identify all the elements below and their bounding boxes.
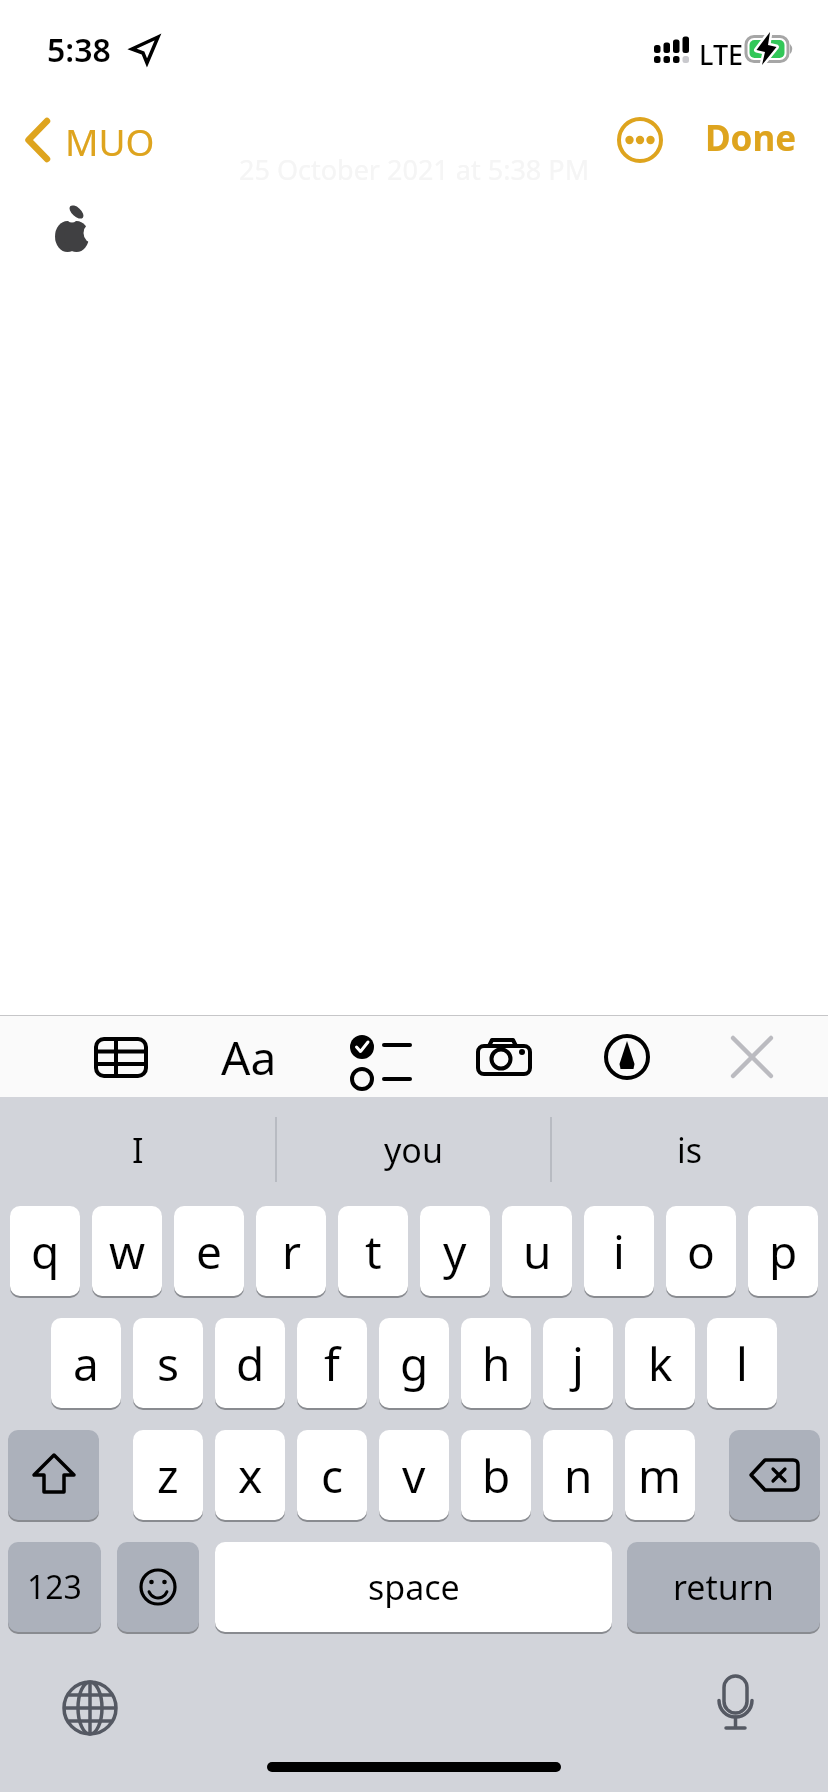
button[interactable] xyxy=(469,1022,539,1092)
button[interactable] xyxy=(717,1022,787,1092)
staticText: is xyxy=(677,1127,703,1173)
staticText: o xyxy=(687,1220,715,1283)
button[interactable] xyxy=(592,1022,662,1092)
button[interactable]: h xyxy=(461,1318,531,1408)
staticText: d xyxy=(236,1332,265,1395)
button[interactable]: t xyxy=(338,1206,408,1296)
staticText: b xyxy=(482,1444,511,1507)
staticText: h xyxy=(482,1332,511,1395)
button[interactable]: n xyxy=(543,1430,613,1520)
staticText: space xyxy=(368,1564,460,1610)
button[interactable]: v xyxy=(379,1430,449,1520)
button[interactable]: c xyxy=(297,1430,367,1520)
staticText: MUO xyxy=(65,116,155,166)
button[interactable]: p xyxy=(748,1206,818,1296)
staticText: e xyxy=(196,1220,222,1283)
button[interactable]: I xyxy=(0,1105,276,1195)
staticText: you xyxy=(384,1127,443,1173)
staticText: g xyxy=(400,1332,429,1395)
button[interactable] xyxy=(55,1672,125,1742)
staticText: i xyxy=(613,1220,625,1283)
button[interactable]: m xyxy=(625,1430,695,1520)
staticText: Done xyxy=(705,114,797,162)
button[interactable]: e xyxy=(174,1206,244,1296)
button[interactable] xyxy=(215,1022,285,1092)
button[interactable] xyxy=(341,1022,411,1092)
button[interactable] xyxy=(16,110,166,170)
button[interactable]: u xyxy=(502,1206,572,1296)
button[interactable]: k xyxy=(625,1318,695,1408)
staticText: t xyxy=(365,1220,382,1283)
staticText: I xyxy=(132,1127,144,1173)
staticText: LTE xyxy=(699,36,744,73)
staticText: q xyxy=(31,1220,60,1283)
button[interactable]: o xyxy=(666,1206,736,1296)
staticText: k xyxy=(648,1332,673,1395)
button[interactable]: space xyxy=(215,1542,612,1632)
button[interactable]: y xyxy=(420,1206,490,1296)
button[interactable]: l xyxy=(707,1318,777,1408)
staticText: a xyxy=(73,1332,99,1395)
button[interactable]: return xyxy=(627,1542,820,1632)
button[interactable]: Done xyxy=(702,111,794,159)
staticText: r xyxy=(282,1220,301,1283)
button[interactable]: g xyxy=(379,1318,449,1408)
button[interactable]: b xyxy=(461,1430,531,1520)
staticText: l xyxy=(736,1332,748,1395)
staticText: f xyxy=(324,1332,340,1395)
button[interactable]: q xyxy=(10,1206,80,1296)
button[interactable] xyxy=(85,1022,155,1092)
button[interactable]: z xyxy=(133,1430,203,1520)
staticText: 5:38 xyxy=(47,28,111,72)
staticText: j xyxy=(572,1332,584,1395)
staticText: u xyxy=(523,1220,552,1283)
staticText: 123 xyxy=(27,1565,82,1609)
button[interactable]: r xyxy=(256,1206,326,1296)
staticText: z xyxy=(157,1444,179,1507)
staticText: m xyxy=(638,1444,682,1507)
button[interactable]: is xyxy=(551,1105,828,1195)
staticText: return xyxy=(673,1564,774,1610)
staticText: s xyxy=(157,1332,180,1395)
button[interactable]: i xyxy=(584,1206,654,1296)
button[interactable] xyxy=(612,112,668,168)
staticText: c xyxy=(321,1444,344,1507)
button[interactable]: d xyxy=(215,1318,285,1408)
button[interactable] xyxy=(117,1542,199,1632)
staticText: x xyxy=(238,1444,263,1507)
staticText: w xyxy=(109,1220,146,1283)
button[interactable] xyxy=(729,1430,820,1520)
staticText: v xyxy=(402,1444,426,1507)
staticText: p xyxy=(769,1220,798,1283)
staticText: Aa xyxy=(221,1026,277,1089)
staticText: 25 October 2021 at 5:38 PM xyxy=(239,151,590,188)
button[interactable]: j xyxy=(543,1318,613,1408)
button[interactable]: x xyxy=(215,1430,285,1520)
button[interactable] xyxy=(8,1430,99,1520)
button[interactable] xyxy=(702,1672,772,1742)
button[interactable]: f xyxy=(297,1318,367,1408)
button[interactable]: 123 xyxy=(8,1542,101,1632)
button[interactable]: s xyxy=(133,1318,203,1408)
button[interactable]: w xyxy=(92,1206,162,1296)
staticText: y xyxy=(443,1220,467,1283)
button[interactable]: you xyxy=(276,1105,551,1195)
staticText: n xyxy=(564,1444,593,1507)
button[interactable]: a xyxy=(51,1318,121,1408)
